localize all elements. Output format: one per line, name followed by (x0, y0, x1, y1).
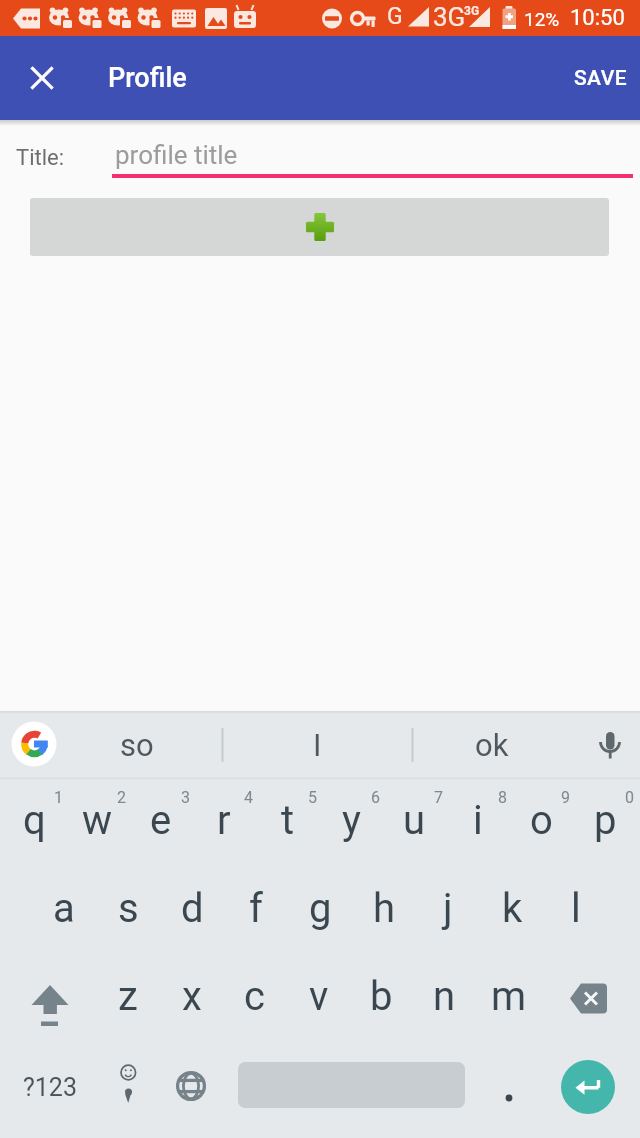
button[interactable]: s (96, 867, 160, 955)
button[interactable]: p (573, 779, 637, 867)
staticText: 3G (464, 4, 480, 18)
staticText: h (373, 885, 396, 932)
staticText: ok (475, 727, 509, 763)
button[interactable]: b (350, 955, 413, 1043)
button[interactable]: m (477, 955, 540, 1043)
button[interactable]: h (352, 867, 416, 955)
staticText: 9 (561, 788, 570, 807)
button[interactable]: r (192, 779, 256, 867)
button[interactable] (0, 955, 96, 1043)
staticText: 0 (625, 788, 634, 807)
button[interactable]: y (319, 779, 383, 867)
button[interactable]: a (32, 867, 96, 955)
staticText: k (502, 885, 523, 932)
button[interactable] (480, 1043, 540, 1131)
staticText: j (443, 885, 453, 932)
button[interactable]: x (160, 955, 223, 1043)
button[interactable] (22, 58, 62, 98)
staticText: 12% (524, 8, 560, 30)
staticText: 4 (244, 788, 253, 807)
button[interactable]: n (413, 955, 476, 1043)
button[interactable]: I (232, 711, 402, 779)
button[interactable]: ok (422, 711, 562, 779)
staticText: o (530, 797, 553, 844)
button[interactable]: ?123 (0, 1043, 100, 1131)
staticText: q (23, 797, 46, 844)
staticText: a (53, 885, 75, 932)
staticText: G (387, 3, 403, 30)
staticText: p (594, 797, 617, 844)
staticText: Title: (16, 145, 65, 171)
staticText: d (181, 885, 204, 932)
staticText: profile title (115, 140, 238, 170)
button[interactable]: f (224, 867, 288, 955)
staticText: 1 (54, 788, 63, 807)
staticText: y (342, 797, 361, 844)
staticText: e (150, 797, 172, 844)
staticText: f (249, 885, 263, 932)
staticText: 8 (498, 788, 507, 807)
staticText: ?123 (23, 1073, 77, 1102)
staticText: 3 (181, 788, 190, 807)
staticText: 7 (434, 788, 443, 807)
staticText: w (82, 797, 113, 844)
button[interactable]: u (382, 779, 446, 867)
staticText: Profile (108, 62, 187, 94)
staticText: n (433, 973, 456, 1020)
staticText: so (120, 727, 154, 763)
button[interactable]: g (288, 867, 352, 955)
staticText: g (309, 885, 332, 932)
staticText: I (313, 727, 322, 763)
staticText: m (491, 973, 527, 1020)
button[interactable]: e (129, 779, 193, 867)
button[interactable]: so (52, 711, 222, 779)
staticText: z (118, 973, 138, 1020)
button[interactable]: d (160, 867, 224, 955)
staticText: 6 (371, 788, 380, 807)
button[interactable] (561, 1060, 615, 1114)
staticText: SAVE (574, 66, 627, 91)
staticText: r (217, 797, 231, 844)
button[interactable]: c (223, 955, 286, 1043)
button[interactable]: q (2, 779, 66, 867)
staticText: l (571, 885, 581, 932)
button[interactable]: v (287, 955, 350, 1043)
staticText: 5 (308, 788, 317, 807)
staticText: b (370, 973, 393, 1020)
button[interactable]: SAVE (574, 66, 627, 91)
staticText: s (118, 885, 139, 932)
button[interactable] (100, 1043, 156, 1131)
button[interactable]: j (416, 867, 480, 955)
button[interactable]: l (544, 867, 608, 955)
staticText: 10:50 (570, 5, 625, 31)
staticText: t (281, 797, 295, 844)
button[interactable] (540, 955, 640, 1043)
staticText: 3G (433, 2, 466, 32)
staticText: x (182, 973, 202, 1020)
button[interactable]: i (446, 779, 510, 867)
button[interactable]: z (96, 955, 159, 1043)
button[interactable]: k (480, 867, 544, 955)
staticText: c (244, 973, 265, 1020)
button[interactable] (30, 198, 609, 256)
staticText: i (473, 797, 483, 844)
staticText: 2 (117, 788, 126, 807)
button[interactable] (156, 1043, 226, 1131)
staticText: u (403, 797, 426, 844)
button[interactable]: w (65, 779, 129, 867)
button[interactable]: t (256, 779, 320, 867)
button[interactable]: o (509, 779, 573, 867)
staticText: v (309, 973, 329, 1020)
